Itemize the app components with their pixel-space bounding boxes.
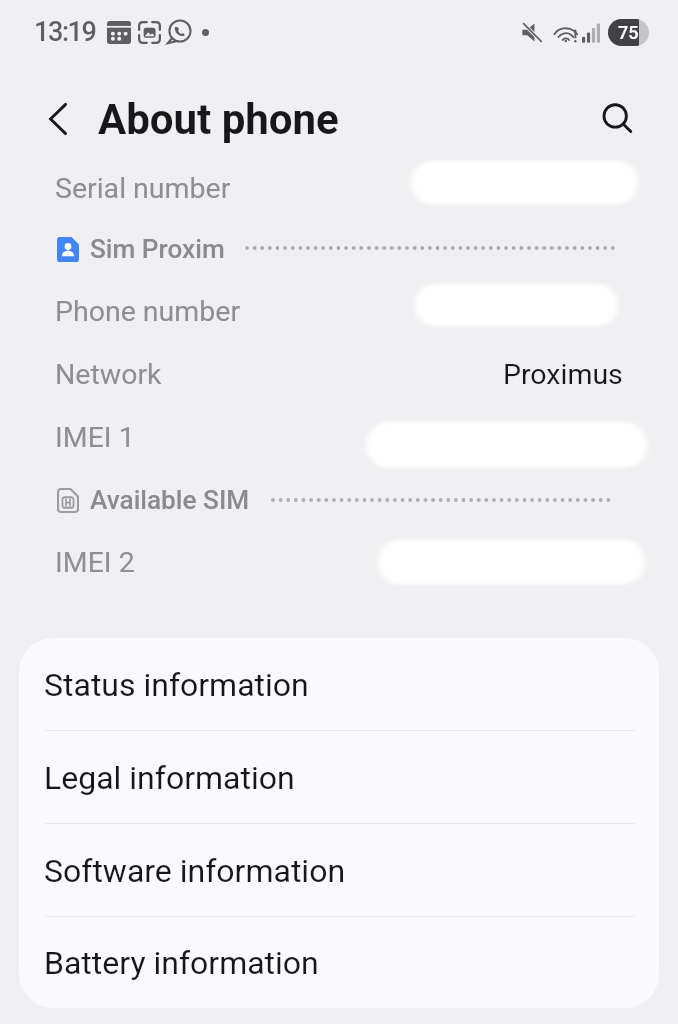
staticText: Network [55, 358, 162, 391]
staticText: Battery information [44, 944, 319, 982]
staticText: IMEI 1 [55, 421, 135, 454]
button[interactable]: Available SIM [0, 470, 678, 531]
staticText: IMEI 2 [55, 546, 135, 579]
staticText: About phone [98, 95, 339, 144]
button[interactable]: Serial number [0, 158, 678, 219]
staticText: 75 [618, 22, 639, 43]
button[interactable]: Battery information [19, 917, 659, 1008]
button[interactable]: Back [39, 100, 77, 138]
staticText: Software information [44, 852, 346, 890]
staticText: Proximus [503, 358, 623, 391]
button[interactable]: Network [0, 344, 678, 405]
button[interactable]: Status information [19, 638, 659, 731]
staticText: Status information [44, 666, 309, 704]
staticText: 13:19 [34, 16, 96, 48]
button[interactable]: Phone number [0, 281, 678, 342]
button[interactable]: Legal information [19, 731, 659, 824]
button[interactable]: Sim Proxim [0, 219, 678, 280]
button[interactable]: IMEI 1 [0, 407, 678, 468]
staticText: Phone number [55, 295, 241, 328]
button[interactable]: Search [600, 100, 638, 138]
staticText: Sim Proxim [90, 234, 225, 265]
staticText: Available SIM [90, 485, 250, 516]
button[interactable]: IMEI 2 [0, 532, 678, 593]
staticText: Serial number [55, 172, 231, 205]
button[interactable]: Software information [19, 824, 659, 917]
staticText: Legal information [44, 759, 295, 797]
